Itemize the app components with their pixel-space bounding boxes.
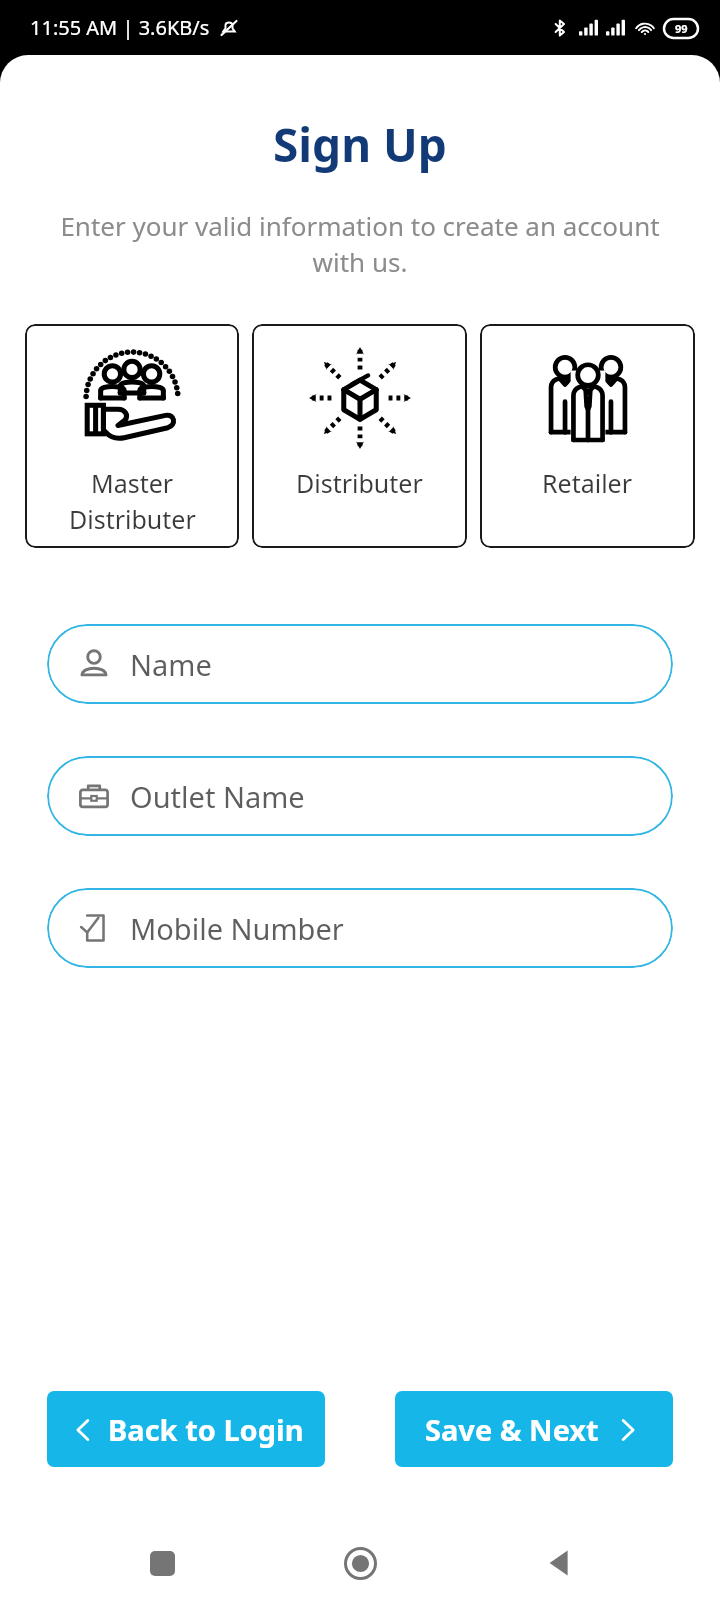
staticText: Mobile Number bbox=[130, 909, 344, 948]
staticText: 11:55 AM | 3.6KB/s bbox=[30, 14, 210, 41]
staticText: Back to Login bbox=[108, 1410, 304, 1449]
button[interactable]: Back to Login bbox=[47, 1391, 325, 1467]
staticText: Distributer bbox=[69, 502, 196, 536]
button[interactable]: Home bbox=[324, 1527, 396, 1599]
button[interactable]: Retailer bbox=[480, 324, 695, 548]
staticText: Save & Next bbox=[425, 1410, 599, 1449]
button[interactable]: Back bbox=[522, 1527, 594, 1599]
button[interactable]: Master bbox=[25, 324, 239, 548]
staticText: Name bbox=[130, 645, 212, 684]
staticText: Retailer bbox=[542, 466, 633, 500]
staticText: 99 bbox=[675, 21, 688, 36]
staticText: Distributer bbox=[296, 466, 423, 500]
staticText: Sign Up bbox=[273, 113, 447, 176]
button[interactable]: Name bbox=[47, 624, 673, 704]
button[interactable]: Recent apps bbox=[126, 1527, 198, 1599]
button[interactable]: Mobile Number bbox=[47, 888, 673, 968]
button[interactable]: Distributer bbox=[252, 324, 467, 548]
staticText: Master bbox=[91, 466, 174, 500]
staticText: Outlet Name bbox=[130, 777, 305, 816]
button[interactable]: Save & Next bbox=[395, 1391, 673, 1467]
button[interactable]: Outlet Name bbox=[47, 756, 673, 836]
staticText: Enter your valid information to create a… bbox=[58, 208, 662, 280]
